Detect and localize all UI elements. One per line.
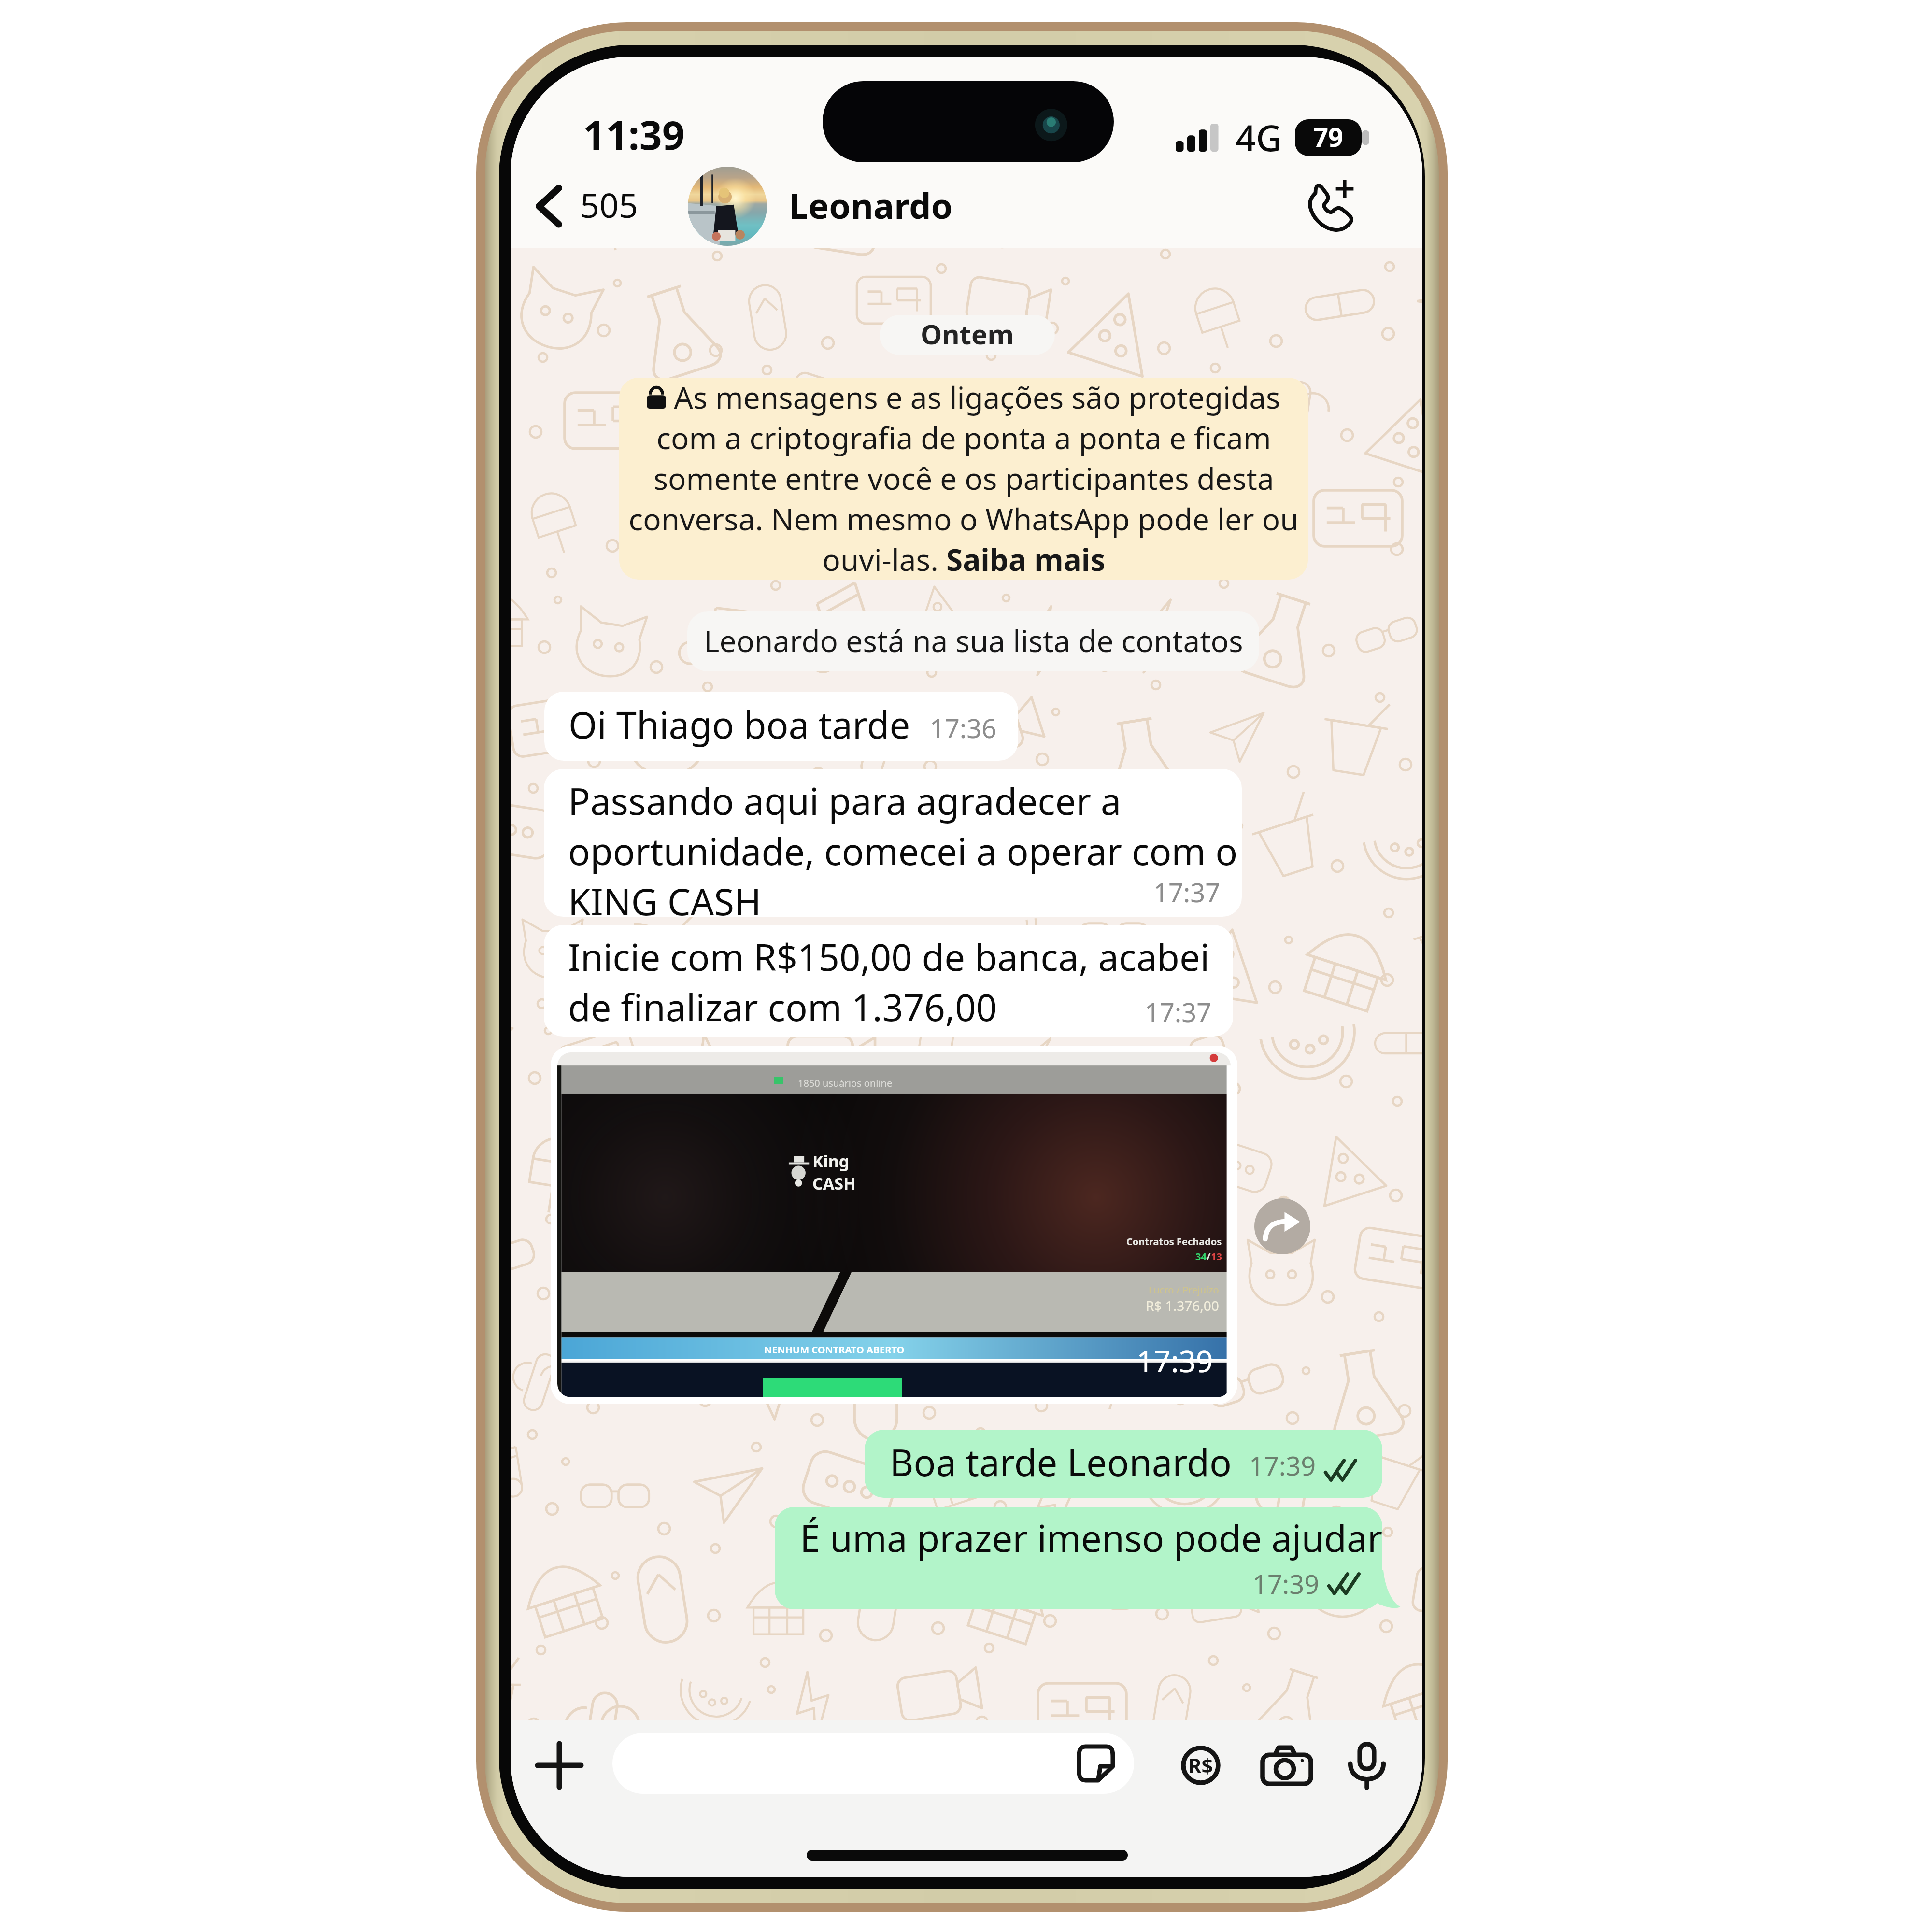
staticText: 17:37 [1145, 994, 1212, 1030]
staticText: 4G [1236, 113, 1282, 162]
button[interactable]: Stickers [1074, 1742, 1118, 1785]
staticText: 17:37 [1153, 874, 1221, 910]
staticText: É uma prazer imenso pode ajudar [800, 1513, 1382, 1563]
button[interactable]: É uma prazer imenso pode ajudar [775, 1507, 1382, 1609]
staticText: somente entre você e os participantes de… [653, 458, 1274, 498]
staticText: Ontem [921, 315, 1014, 352]
staticText: 79 [1313, 119, 1343, 155]
staticText: Passando aqui para agradecer a [568, 776, 1122, 826]
staticText: R$ [1188, 1751, 1213, 1779]
staticText: Boa tarde Leonardo [890, 1437, 1232, 1487]
button[interactable]: 1850 usuários online [551, 1046, 1237, 1404]
staticText: conversa. Nem mesmo o WhatsApp pode ler … [628, 498, 1299, 539]
button[interactable]: Back to 505 [523, 164, 652, 248]
button[interactable]: Voice message [1331, 1730, 1403, 1801]
staticText: KING CASH [568, 876, 762, 917]
button[interactable]: Camera [1251, 1730, 1322, 1801]
button[interactable]: Ontem [880, 315, 1055, 355]
button[interactable]: Add call [1292, 170, 1364, 242]
button[interactable]: Boa tarde Leonardo [865, 1430, 1382, 1498]
button[interactable]: Leonardo está na sua lista de contatos [687, 611, 1259, 671]
staticText: 17:39 [1252, 1566, 1320, 1602]
staticText: Inicie com R$150,00 de banca, acabei [568, 932, 1210, 982]
staticText: Contratos Fechados [1126, 1235, 1222, 1248]
staticText: 11:39 [583, 107, 685, 161]
staticText: Leonardo está na sua lista de contatos [704, 620, 1243, 661]
staticText: R$ 1.376,00 [1146, 1296, 1219, 1315]
button[interactable]: Leonardo [688, 164, 953, 248]
staticText: oportunidade, comecei a operar com o [568, 826, 1238, 876]
button[interactable]: As mensagens e as ligações são protegida… [619, 378, 1308, 580]
staticText: / [1207, 1250, 1211, 1263]
staticText: ouvi-las. Saiba mais [822, 539, 1106, 579]
staticText: 17:36 [930, 710, 997, 746]
staticText: Oi Thiago boa tarde [568, 699, 910, 750]
staticText: Lucro / Prejuízo [1149, 1283, 1219, 1296]
staticText: CASH [812, 1172, 856, 1194]
button[interactable]: Passando aqui para agradecer a [544, 769, 1242, 917]
staticText: de finalizar com 1.376,00 [568, 982, 997, 1032]
button[interactable]: Oi Thiago boa tarde [544, 692, 1018, 761]
staticText: Leonardo [789, 182, 953, 229]
staticText: As mensagens e as ligações são protegida… [674, 378, 1280, 417]
button[interactable]: Forward [1254, 1198, 1310, 1254]
staticText: 13 [1211, 1250, 1222, 1263]
staticText: 505 [580, 182, 639, 227]
staticText: 1850 usuários online [798, 1077, 893, 1090]
staticText: com a criptografia de ponta a ponta e fi… [656, 417, 1271, 458]
staticText: 17:39 [1136, 1340, 1213, 1381]
staticText: 34 [1195, 1250, 1207, 1263]
staticText: King [812, 1150, 850, 1172]
button[interactable]: Attach [529, 1735, 589, 1795]
button[interactable]: Stickers [612, 1733, 1134, 1794]
staticText: 17:39 [1249, 1448, 1316, 1483]
staticText: NENHUM CONTRATO ABERTO [764, 1343, 905, 1356]
button[interactable]: Inicie com R$150,00 de banca, acabei [544, 925, 1233, 1037]
button[interactable]: Payments [1165, 1730, 1236, 1801]
